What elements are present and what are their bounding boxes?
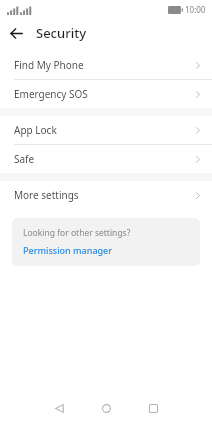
staticText: Looking for other settings? bbox=[23, 227, 131, 239]
button[interactable]: Permission manager bbox=[23, 244, 113, 256]
button[interactable]: Home bbox=[86, 392, 126, 424]
staticText: App Lock bbox=[14, 123, 194, 137]
button[interactable]: Back bbox=[39, 392, 79, 424]
button[interactable]: Back bbox=[0, 19, 32, 47]
button[interactable]: App Lock bbox=[0, 116, 212, 144]
staticText: Security bbox=[36, 24, 86, 42]
button[interactable]: Recent apps bbox=[133, 392, 173, 424]
staticText: Emergency SOS bbox=[14, 87, 194, 101]
button[interactable]: Emergency SOS bbox=[0, 80, 212, 108]
button[interactable]: More settings bbox=[0, 181, 212, 209]
staticText: Find My Phone bbox=[14, 58, 194, 72]
staticText: Permission manager bbox=[23, 244, 113, 256]
button[interactable]: Safe bbox=[0, 145, 212, 173]
staticText: Safe bbox=[14, 152, 194, 166]
staticText: More settings bbox=[14, 188, 194, 202]
staticText: 10:00 bbox=[185, 4, 206, 15]
button[interactable]: Find My Phone bbox=[0, 51, 212, 79]
